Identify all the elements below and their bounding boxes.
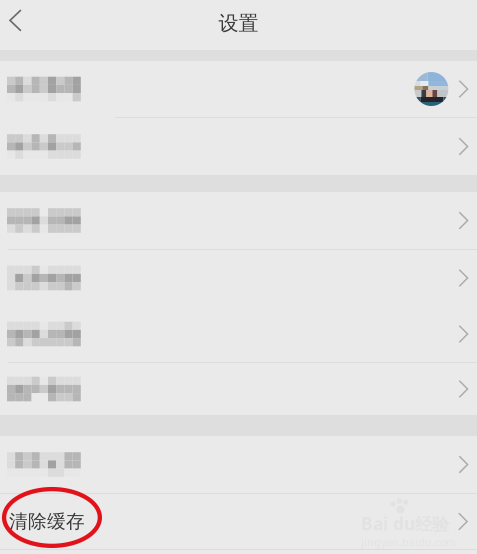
button[interactable]: Settings row — [0, 363, 477, 415]
button[interactable]: Settings row — [0, 250, 477, 306]
button[interactable]: Settings row — [0, 192, 477, 249]
button[interactable]: Settings row — [0, 306, 477, 362]
staticText: Bai du经验 — [361, 512, 449, 535]
button[interactable]: 清除缓存 — [0, 494, 477, 549]
button[interactable]: Back — [0, 0, 38, 49]
staticText: 清除缓存 — [9, 510, 85, 533]
button[interactable]: Settings row — [0, 118, 477, 175]
button[interactable]: Settings row — [0, 61, 477, 117]
staticText: 设置 — [218, 11, 258, 36]
button[interactable]: Settings row — [0, 436, 477, 493]
